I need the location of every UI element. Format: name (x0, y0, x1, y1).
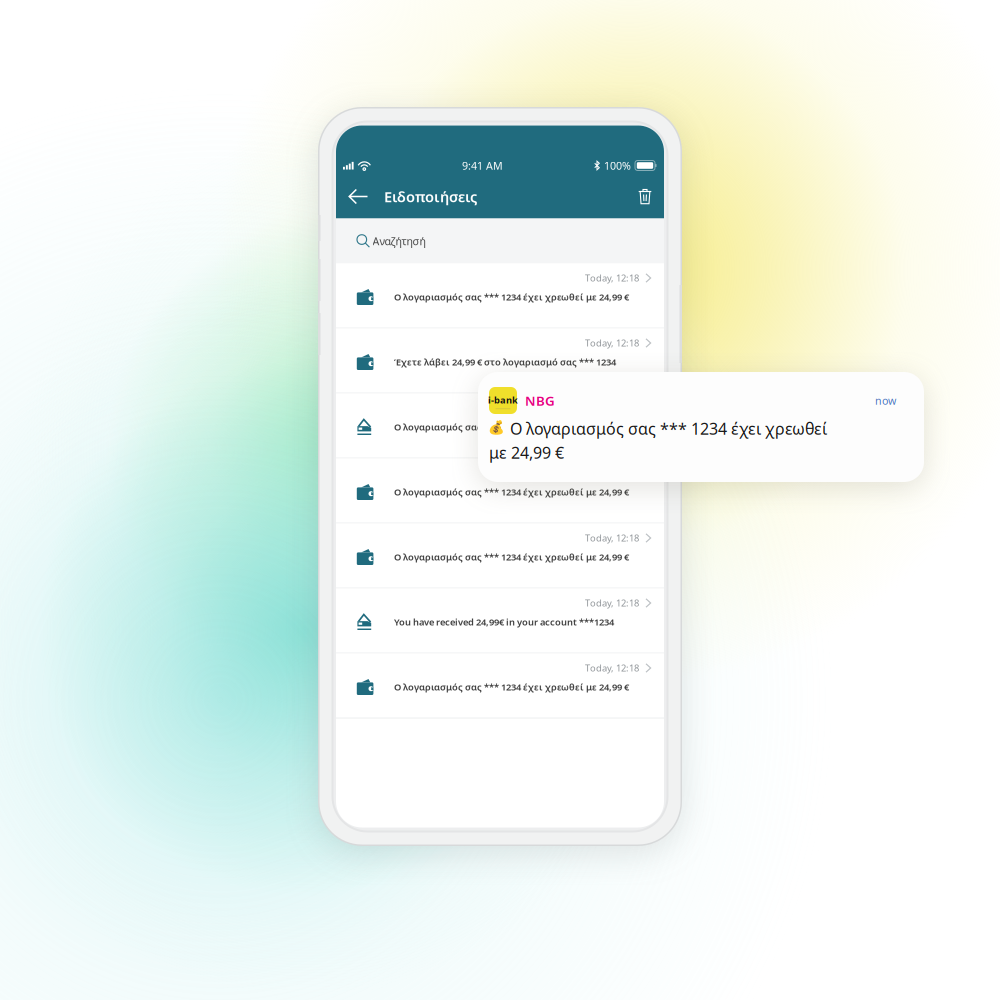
button[interactable]: Today, 12:18 (336, 523, 664, 588)
staticText: You have received 24,99€ in your account… (394, 616, 614, 628)
button[interactable]: Today, 12:18 (336, 263, 664, 328)
staticText: Ο λογαριασμός σας *** 1234 έχει χρεωθεί … (394, 551, 629, 563)
staticText: 100% (604, 158, 631, 173)
staticText: Ο λογαριασμός σας *** 1234 έχει χρεωθεί … (394, 421, 629, 433)
staticText: Today, 12:18 (585, 597, 639, 609)
staticText: Έχετε λάβει 24,99 € στο λογαριασμό σας *… (394, 356, 616, 368)
staticText: Today, 12:18 (585, 272, 639, 284)
staticText: Ο λογαριασμός σας *** 1234 έχει χρεωθεί … (394, 681, 629, 693)
staticText: i-bank (488, 394, 518, 406)
button[interactable]: Today, 12:18 (336, 588, 664, 653)
staticText: now (875, 393, 896, 408)
button[interactable]: Back (348, 183, 382, 209)
staticText: Today, 12:18 (585, 337, 639, 349)
staticText: Ο λογαριασμός σας *** 1234 έχει χρεωθεί … (394, 291, 629, 303)
button[interactable]: Delete all notifications (626, 183, 652, 209)
staticText: Today, 12:18 (585, 662, 639, 674)
staticText: Today, 12:18 (585, 532, 639, 544)
staticText: Ο λογαριασμός σας *** 1234 έχει χρεωθεί (510, 418, 827, 439)
staticText: 9:41 AM (462, 158, 503, 173)
button[interactable]: Today, 12:18 (336, 328, 664, 393)
staticText: με 24,99 € (489, 442, 564, 463)
staticText: 💰 (487, 420, 504, 435)
staticText: NBG (525, 392, 555, 409)
button[interactable]: Αναζήτησή (336, 218, 664, 263)
staticText: Ο λογαριασμός σας *** 1234 έχει χρεωθεί … (394, 486, 629, 498)
button[interactable]: Today, 12:18 (336, 653, 664, 718)
button[interactable]: Today, 12:18 (336, 458, 664, 523)
staticText: Αναζήτησή (372, 234, 425, 248)
staticText: Ειδοποιήσεις (384, 187, 477, 206)
button[interactable]: Today, 12:18 (336, 393, 664, 458)
